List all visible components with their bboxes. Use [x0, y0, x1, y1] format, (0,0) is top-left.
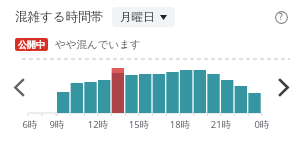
- staticText: 9時: [43, 118, 71, 131]
- staticText: 混雑する時間帯: [15, 9, 104, 25]
- staticText: 月曜日: [120, 10, 155, 24]
- staticText: ?: [279, 11, 283, 23]
- button[interactable]: 次の日: [272, 76, 294, 98]
- staticText: 6時: [16, 118, 44, 131]
- staticText: 公開中: [18, 39, 45, 50]
- staticText: 21時: [207, 118, 235, 131]
- button[interactable]: ヘルプ: [268, 4, 294, 30]
- staticText: 18時: [166, 118, 194, 131]
- staticText: 12時: [84, 118, 112, 131]
- button[interactable]: 月曜日: [112, 7, 175, 27]
- staticText: やや混んでいます: [55, 38, 141, 51]
- staticText: 0時: [248, 118, 276, 131]
- button[interactable]: 前の日: [8, 76, 30, 98]
- staticText: 15時: [125, 118, 153, 131]
